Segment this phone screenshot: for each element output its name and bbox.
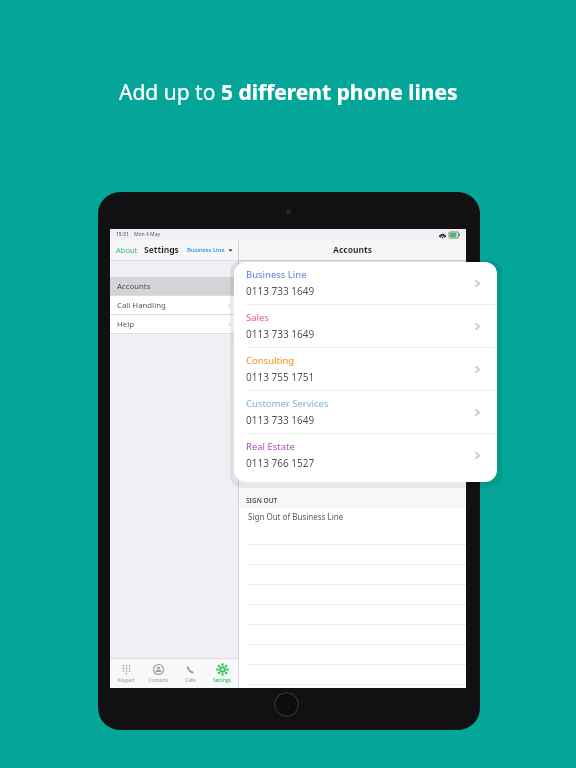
button[interactable]: Settings <box>206 659 238 688</box>
staticText: 0113 755 1751 <box>246 370 315 384</box>
staticText: Sign Out of Business Line <box>248 511 344 522</box>
staticText: Customer Services <box>246 397 329 410</box>
button[interactable]: Accounts <box>110 277 238 295</box>
staticText: 15:31 <box>116 231 129 238</box>
staticText: Business Line <box>246 268 307 281</box>
staticText: Settings <box>144 244 179 256</box>
button[interactable]: Customer Services <box>234 391 497 433</box>
button[interactable]: About <box>110 245 144 255</box>
staticText: SIGN OUT <box>246 496 278 505</box>
staticText: 0113 766 1527 <box>246 456 315 470</box>
staticText: Help <box>117 319 134 330</box>
staticText: About <box>116 245 138 255</box>
staticText: Sales <box>246 311 269 324</box>
button[interactable]: Consulting <box>234 348 497 390</box>
button[interactable]: Sign Out of Business Line <box>239 508 466 525</box>
button[interactable]: Contacts <box>142 659 174 688</box>
staticText: Consulting <box>246 354 295 367</box>
button[interactable]: Calls <box>174 659 206 688</box>
button[interactable]: Business Line <box>234 262 497 304</box>
button[interactable]: Help <box>110 315 238 333</box>
staticText: Calls <box>185 677 196 683</box>
button[interactable]: Keypad <box>110 659 142 688</box>
staticText: Contacts <box>149 677 168 683</box>
staticText: Keypad <box>118 677 134 683</box>
staticText: 5 different phone lines <box>221 78 458 107</box>
button[interactable]: Real Estate <box>234 434 497 476</box>
staticText: 0113 733 1649 <box>246 413 315 427</box>
staticText: Accounts <box>117 281 151 292</box>
staticText: Accounts <box>333 244 372 256</box>
staticText: Settings <box>213 677 231 683</box>
button[interactable]: Call Handling <box>110 296 238 314</box>
staticText: 0113 733 1649 <box>246 284 315 298</box>
staticText: Call Handling <box>117 300 166 311</box>
staticText: Add up to <box>119 78 221 107</box>
staticText: Mon 4 May <box>134 231 161 238</box>
button[interactable]: Business Line <box>187 246 238 254</box>
button[interactable]: Sales <box>234 305 497 347</box>
staticText: Real Estate <box>246 440 295 453</box>
staticText: 0113 733 1649 <box>246 327 315 341</box>
staticText: Business Line <box>187 246 225 254</box>
